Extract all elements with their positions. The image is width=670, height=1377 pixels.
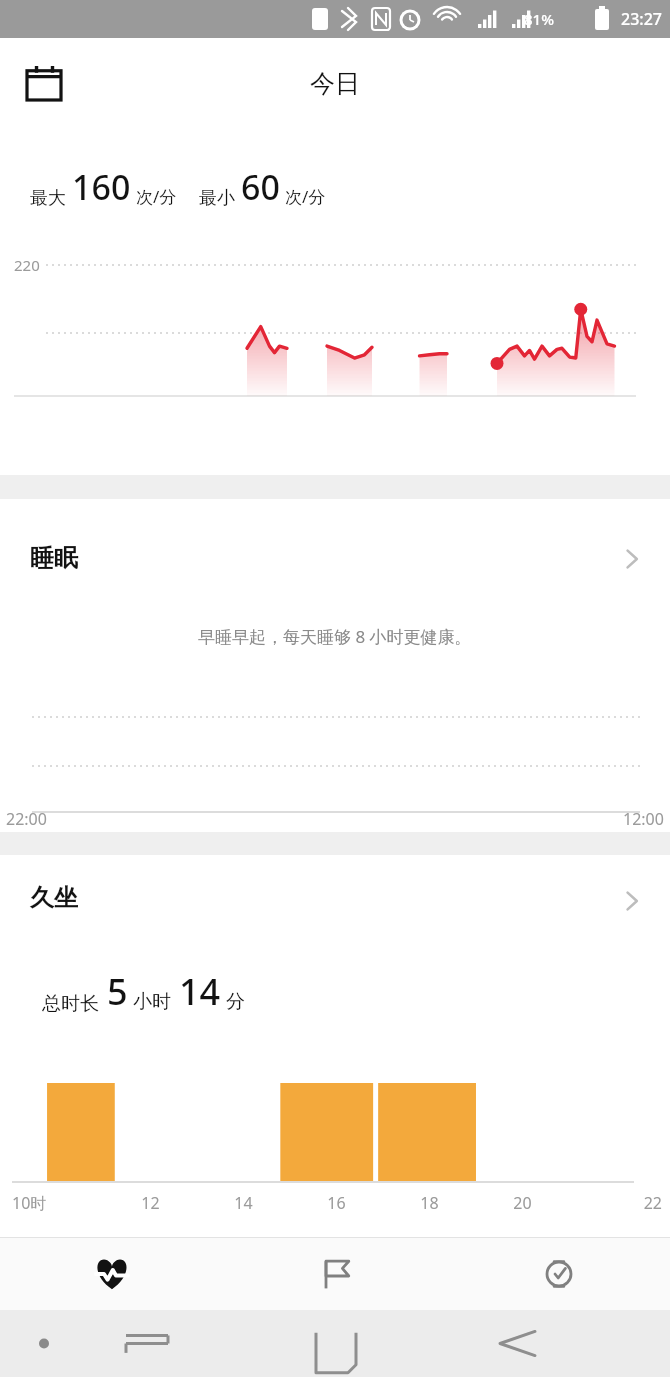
staticText: 60 [241,164,280,210]
button[interactable]: Heart rate [0,1238,224,1310]
staticText: 81% [524,9,554,29]
staticText: 分 [226,990,245,1014]
staticText: 22:00 [6,808,47,830]
staticText: 20 [476,1192,569,1213]
button[interactable]: Goals [224,1238,447,1310]
staticText: 18 [383,1192,476,1213]
button[interactable]: 久坐 [0,855,670,1213]
staticText: 最小 [199,187,235,210]
staticText: 160 [72,164,131,210]
button[interactable]: 最大 [0,128,670,475]
staticText: 5 [107,967,128,1016]
staticText: 12:00 [623,808,664,830]
button[interactable]: Device [447,1238,670,1310]
staticText: 220 [14,255,40,275]
staticText: 小时 [133,990,171,1014]
button[interactable]: Open sleep details [612,539,652,579]
staticText: 16 [290,1192,383,1213]
staticText: 23:27 [621,8,662,30]
staticText: 14 [197,1192,290,1213]
staticText: 早睡早起，每天睡够 8 小时更健康。 [198,625,472,648]
staticText: 22 [569,1192,662,1213]
staticText: 14 [179,967,221,1016]
staticText: 次/分 [285,185,326,208]
staticText: 睡眠 [30,543,78,573]
button[interactable]: 睡眠 [0,499,670,832]
staticText: 今日 [310,68,360,99]
staticText: 12 [104,1192,197,1213]
button[interactable]: Calendar [16,55,72,111]
staticText: 总时长 [42,992,99,1016]
staticText: 久坐 [30,883,78,913]
staticText: 10时 [12,1192,104,1213]
staticText: 次/分 [136,185,177,208]
staticText: 最大 [30,187,66,210]
button[interactable]: Open sedentary details [612,881,652,921]
